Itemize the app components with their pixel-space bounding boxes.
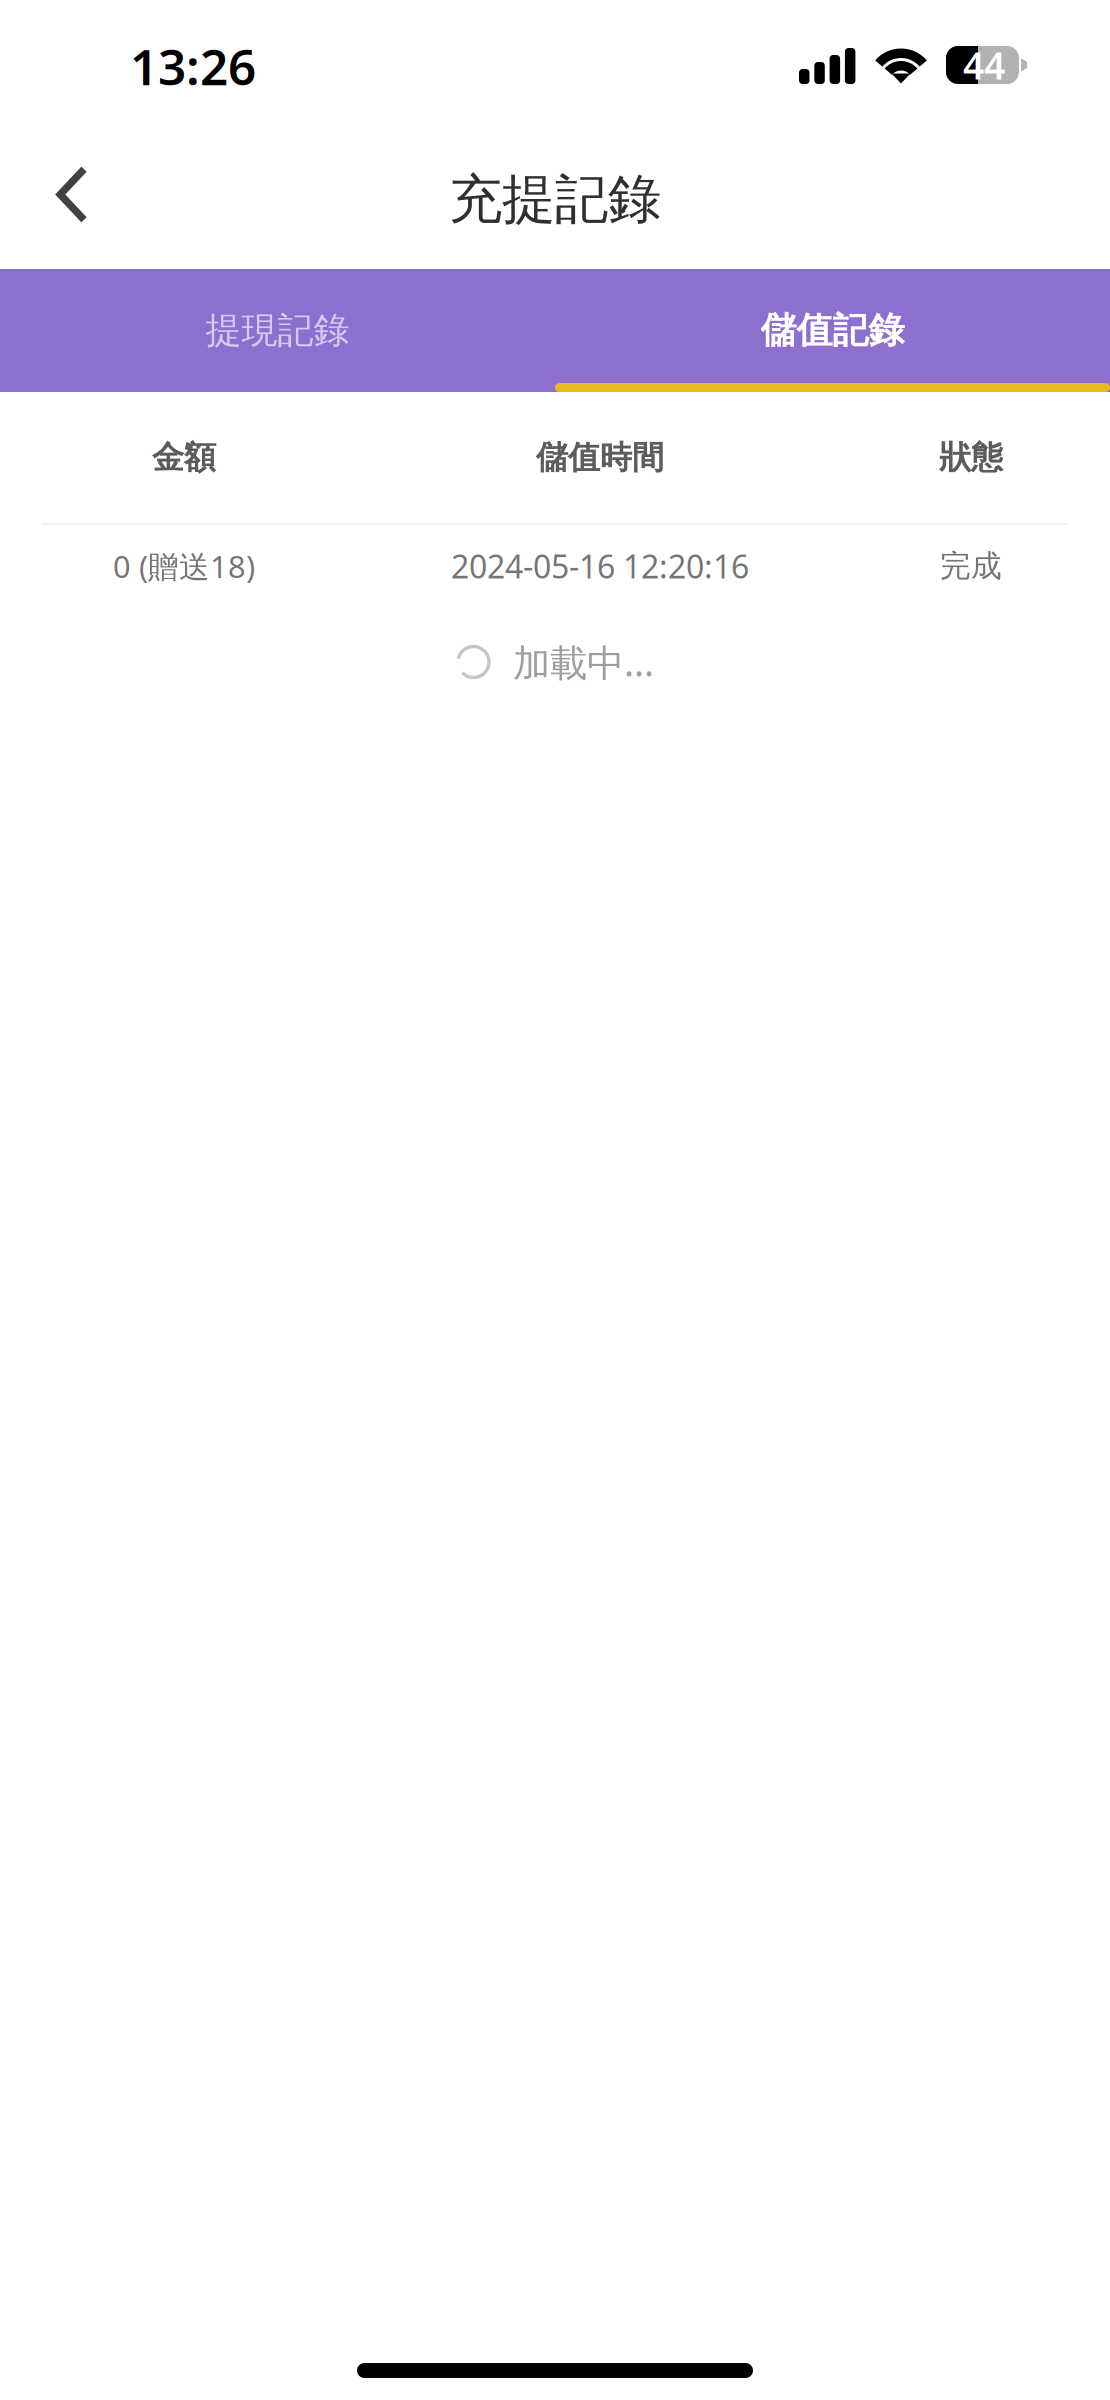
staticText: 2024-05-16 12:20:16 [451, 545, 749, 587]
staticText: 狀態 [939, 438, 1003, 477]
staticText: 13:26 [130, 33, 256, 99]
staticText: 0 (贈送18) [113, 546, 255, 586]
staticText: 提現記錄 [205, 308, 349, 353]
staticText: 完成 [940, 547, 1002, 585]
staticText: 金額 [152, 438, 216, 477]
staticText: 儲值記錄 [760, 308, 904, 353]
button[interactable]: 0 (贈送18) [0, 525, 1110, 615]
staticText: 加載中... [513, 637, 654, 687]
button[interactable]: 儲值記錄 [555, 269, 1110, 392]
staticText: 儲值時間 [536, 438, 664, 477]
button[interactable]: Back [28, 156, 116, 244]
staticText: 充提記錄 [449, 167, 661, 232]
button[interactable]: 提現記錄 [0, 269, 555, 392]
staticText: 44 [963, 40, 1005, 90]
